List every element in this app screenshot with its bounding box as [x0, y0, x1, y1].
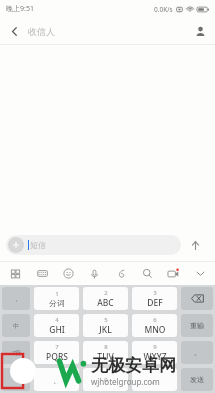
button[interactable]: 0: [83, 368, 128, 391]
staticText: 7: [55, 343, 59, 351]
button[interactable]: 6: [132, 314, 177, 337]
staticText: 发送: [190, 375, 204, 384]
button[interactable]: ！: [2, 368, 30, 391]
button[interactable]: 8: [83, 341, 128, 364]
staticText: 3: [153, 289, 157, 297]
staticText: 8: [104, 343, 108, 351]
button[interactable]: Emoji: [57, 262, 79, 285]
button[interactable]: 5: [83, 314, 128, 337]
staticText: GHI: [49, 324, 65, 336]
staticText: 重输: [190, 321, 204, 330]
button[interactable]: Video: [162, 262, 184, 285]
staticText: 2: [104, 289, 108, 297]
button[interactable]: Add attachment: [6, 235, 181, 255]
staticText: WXYZ: [143, 351, 167, 363]
staticText: 短信: [30, 240, 46, 250]
button[interactable]: 、: [34, 368, 79, 391]
staticText: 0.0K/s: [154, 5, 173, 14]
staticText: wjhotelgroup.com: [91, 376, 160, 387]
button[interactable]: ?符: [2, 341, 30, 364]
staticText: 、: [53, 375, 61, 385]
button[interactable]: 。: [132, 368, 177, 391]
staticText: 6: [153, 316, 157, 324]
button[interactable]: 9: [132, 341, 177, 364]
staticText: 收信人: [28, 26, 55, 37]
button[interactable]: 发送: [181, 368, 213, 391]
staticText: ，: [13, 295, 19, 303]
staticText: 9: [153, 343, 157, 351]
button[interactable]: Grid: [4, 262, 26, 285]
staticText: ABC: [97, 297, 114, 309]
staticText: DEF: [147, 297, 163, 309]
button[interactable]: 中: [2, 314, 30, 337]
staticText: 无极安卓网: [91, 355, 176, 376]
staticText: 1: [55, 290, 59, 298]
staticText: PQRS: [46, 351, 68, 363]
button[interactable]: 2: [83, 287, 128, 310]
button[interactable]: 1: [34, 287, 79, 310]
staticText: TUV: [97, 351, 114, 363]
staticText: JKL: [99, 324, 112, 336]
staticText: ！: [13, 376, 19, 384]
button[interactable]: Collapse keyboard: [189, 262, 211, 285]
button[interactable]: 4: [34, 314, 79, 337]
staticText: 4: [55, 316, 59, 324]
button[interactable]: Contacts: [185, 18, 215, 44]
staticText: 分词: [49, 298, 65, 308]
button[interactable]: Search: [136, 262, 158, 285]
button[interactable]: Voice: [83, 262, 105, 285]
button[interactable]: Add attachment: [8, 237, 24, 253]
button[interactable]: 重输: [181, 314, 213, 337]
staticText: 晚上9:51: [6, 4, 34, 14]
staticText: ?符: [12, 349, 21, 357]
button[interactable]: 收信人: [28, 18, 185, 44]
button[interactable]: 7: [34, 341, 79, 364]
staticText: 。: [151, 375, 159, 385]
button[interactable]: Backspace: [181, 287, 213, 310]
staticText: 5: [104, 316, 108, 324]
button[interactable]: 3: [132, 287, 177, 310]
button[interactable]: Back: [0, 18, 28, 44]
staticText: 。: [194, 348, 201, 357]
staticText: 中: [13, 322, 19, 330]
staticText: 0: [104, 376, 108, 384]
button[interactable]: Send: [181, 231, 209, 259]
button[interactable]: Keyboard: [31, 262, 53, 285]
staticText: MNO: [144, 324, 166, 336]
button[interactable]: Handwriting: [110, 262, 132, 285]
